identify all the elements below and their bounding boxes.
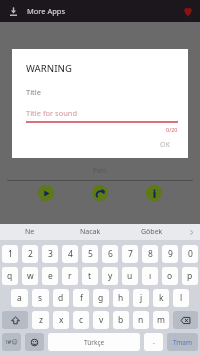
button[interactable]: ı (142, 267, 158, 285)
button[interactable]: w (22, 267, 38, 285)
staticText: Ne (25, 227, 35, 237)
button[interactable]: Ne (0, 224, 60, 240)
staticText: 3 (48, 248, 53, 260)
button[interactable]: More suggestions (182, 224, 200, 240)
staticText: . (153, 337, 155, 347)
staticText: j (140, 292, 143, 304)
staticText: h (118, 292, 124, 304)
button[interactable]: 0 (182, 245, 198, 263)
button[interactable]: Info (146, 185, 162, 201)
staticText: f (80, 292, 83, 304)
button[interactable]: 2 (22, 245, 38, 263)
button[interactable]: j (133, 289, 149, 307)
staticText: 8 (148, 248, 153, 260)
staticText: a (17, 292, 22, 304)
button[interactable]: More Apps (6, 4, 20, 18)
button[interactable]: m (153, 311, 169, 329)
staticText: ı (149, 270, 152, 282)
button[interactable]: s (32, 289, 49, 307)
staticText: g (98, 292, 104, 304)
staticText: 4 (68, 248, 73, 260)
button[interactable]: OK (152, 136, 178, 154)
button[interactable]: k (153, 289, 169, 307)
staticText: b (118, 314, 124, 326)
button[interactable]: Record (181, 5, 194, 18)
button[interactable]: Backspace (173, 311, 198, 329)
button[interactable]: q (2, 267, 18, 285)
button[interactable]: l (173, 289, 189, 307)
staticText: d (58, 292, 64, 304)
staticText: 1 (8, 248, 13, 260)
staticText: Title (26, 87, 41, 97)
staticText: e (48, 270, 53, 282)
button[interactable]: o (162, 267, 178, 285)
staticText: w (27, 270, 34, 282)
button[interactable]: Symbols (2, 333, 21, 351)
staticText: 9 (168, 248, 173, 260)
staticText: z (39, 314, 43, 326)
staticText: u (127, 270, 133, 282)
staticText: Title for sound (26, 108, 78, 118)
button[interactable]: a (11, 289, 28, 307)
staticText: !#☺ (6, 338, 18, 346)
button[interactable]: Emoji (25, 333, 44, 351)
button[interactable]: 9 (162, 245, 178, 263)
staticText: q (7, 270, 13, 282)
staticText: n (138, 314, 144, 326)
button[interactable]: p (182, 267, 198, 285)
button[interactable]: x (53, 311, 69, 329)
button[interactable]: b (113, 311, 129, 329)
button[interactable]: Nacak (60, 224, 121, 240)
button[interactable]: Tmam (167, 333, 198, 351)
button[interactable]: 7 (122, 245, 138, 263)
staticText: Türkçe (84, 338, 105, 347)
button[interactable]: r (62, 267, 78, 285)
staticText: Nacak (80, 227, 101, 237)
staticText: c (79, 314, 84, 326)
staticText: Tmam (173, 338, 193, 347)
staticText: WARNING (26, 62, 72, 75)
button[interactable]: Next (92, 185, 108, 201)
staticText: Göbek (141, 227, 163, 237)
staticText: x (59, 314, 64, 326)
button[interactable]: f (73, 289, 89, 307)
button[interactable]: Göbek (121, 224, 182, 240)
staticText: OK (160, 140, 170, 150)
button[interactable]: z (32, 311, 49, 329)
button[interactable]: Shift (2, 311, 28, 329)
staticText: m (157, 314, 165, 326)
button[interactable]: e (42, 267, 58, 285)
staticText: 6 (108, 248, 113, 260)
staticText: r (68, 270, 72, 282)
staticText: 7 (128, 248, 133, 260)
button[interactable]: y (102, 267, 118, 285)
button[interactable]: 4 (62, 245, 78, 263)
button[interactable]: c (73, 311, 89, 329)
staticText: 0 (188, 248, 193, 260)
staticText: 2 (28, 248, 33, 260)
staticText: s (38, 292, 43, 304)
button[interactable]: d (53, 289, 69, 307)
staticText: o (167, 270, 173, 282)
button[interactable]: n (133, 311, 149, 329)
button[interactable]: u (122, 267, 138, 285)
staticText: 5 (88, 248, 93, 260)
button[interactable]: 1 (2, 245, 18, 263)
button[interactable]: g (93, 289, 109, 307)
button[interactable]: . (144, 333, 163, 351)
button[interactable]: v (93, 311, 109, 329)
button[interactable]: Play (38, 185, 54, 201)
staticText: Pain (93, 166, 107, 175)
button[interactable]: 8 (142, 245, 158, 263)
staticText: y (108, 270, 113, 282)
button[interactable]: t (82, 267, 98, 285)
staticText: t (88, 270, 92, 282)
button[interactable]: 6 (102, 245, 118, 263)
staticText: More Apps (27, 6, 66, 16)
button[interactable]: 3 (42, 245, 58, 263)
button[interactable]: h (113, 289, 129, 307)
staticText: k (159, 292, 164, 304)
button[interactable]: 5 (82, 245, 98, 263)
staticText: p (187, 270, 193, 282)
button[interactable]: Türkçe (48, 333, 140, 351)
